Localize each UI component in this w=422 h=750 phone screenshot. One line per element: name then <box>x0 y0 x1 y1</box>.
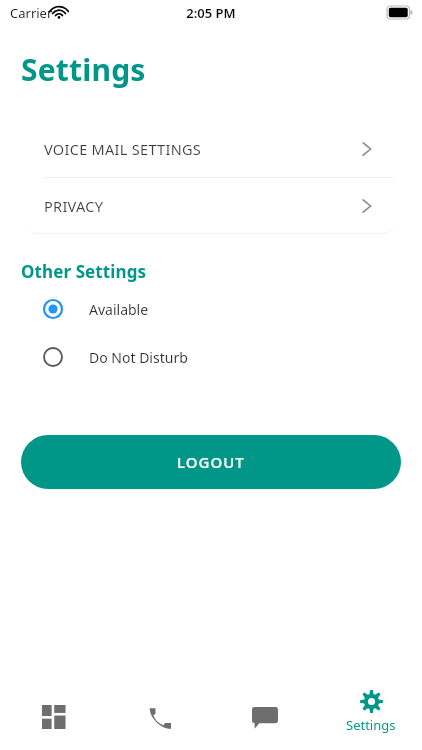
staticText: Do Not Disturb <box>89 348 188 367</box>
button[interactable]: Available <box>38 294 288 324</box>
button[interactable]: Settings <box>330 690 412 748</box>
button[interactable]: Dashboard <box>14 694 94 746</box>
staticText: Settings <box>346 716 396 734</box>
button[interactable]: Calls <box>120 694 200 746</box>
staticText: Settings <box>21 49 146 90</box>
staticText: VOICE MAIL SETTINGS <box>44 139 361 159</box>
staticText: 2:05 PM <box>0 4 422 22</box>
staticText: Other Settings <box>21 260 147 283</box>
button[interactable]: LOGOUT <box>21 435 401 489</box>
button[interactable]: PRIVACY <box>26 178 393 233</box>
staticText: PRIVACY <box>44 196 361 216</box>
staticText: LOGOUT <box>177 452 245 472</box>
button[interactable]: Messages <box>225 694 305 746</box>
staticText: Available <box>89 300 149 319</box>
button[interactable]: VOICE MAIL SETTINGS <box>26 121 393 177</box>
staticText: Carrier <box>10 4 53 22</box>
button[interactable]: Do Not Disturb <box>38 342 288 372</box>
